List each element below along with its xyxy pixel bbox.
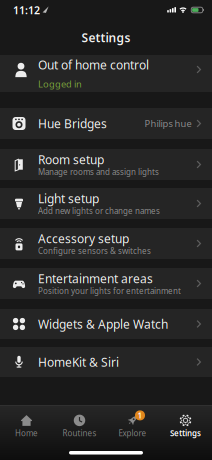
staticText: Position your lights for entertainment: [38, 286, 181, 296]
staticText: Explore: [118, 428, 146, 438]
button[interactable]: Out of home control: [0, 55, 212, 92]
staticText: Manage rooms and assign lights: [38, 167, 159, 177]
button[interactable]: Settings: [159, 409, 212, 443]
staticText: 11:12: [13, 3, 40, 17]
staticText: Light setup: [38, 191, 99, 207]
button[interactable]: Home: [0, 409, 53, 443]
staticText: Configure sensors & switches: [38, 246, 151, 256]
staticText: Philips hue: [144, 117, 191, 130]
staticText: Add new lights or change names: [38, 206, 160, 216]
staticText: Routines: [62, 428, 96, 438]
button[interactable]: 1: [106, 409, 159, 443]
staticText: Accessory setup: [38, 231, 129, 247]
staticText: Hue Bridges: [38, 115, 107, 131]
staticText: Settings: [170, 428, 201, 438]
staticText: Room setup: [38, 152, 104, 168]
staticText: Widgets & Apple Watch: [38, 316, 168, 332]
button[interactable]: Accessory setup: [0, 228, 212, 259]
button[interactable]: Light setup: [0, 188, 212, 219]
button[interactable]: Entertainment areas: [0, 268, 212, 299]
button[interactable]: Widgets & Apple Watch: [0, 309, 212, 339]
staticText: Settings: [81, 29, 130, 45]
staticText: Entertainment areas: [38, 271, 153, 287]
button[interactable]: Routines: [53, 409, 106, 443]
staticText: Out of home control: [38, 57, 149, 73]
button[interactable]: Room setup: [0, 149, 212, 180]
button[interactable]: Hue Bridges: [0, 108, 212, 139]
button[interactable]: HomeKit & Siri: [0, 347, 212, 377]
staticText: HomeKit & Siri: [38, 354, 119, 370]
staticText: Logged in: [38, 78, 82, 90]
staticText: 1: [137, 410, 142, 421]
staticText: Home: [15, 428, 38, 438]
